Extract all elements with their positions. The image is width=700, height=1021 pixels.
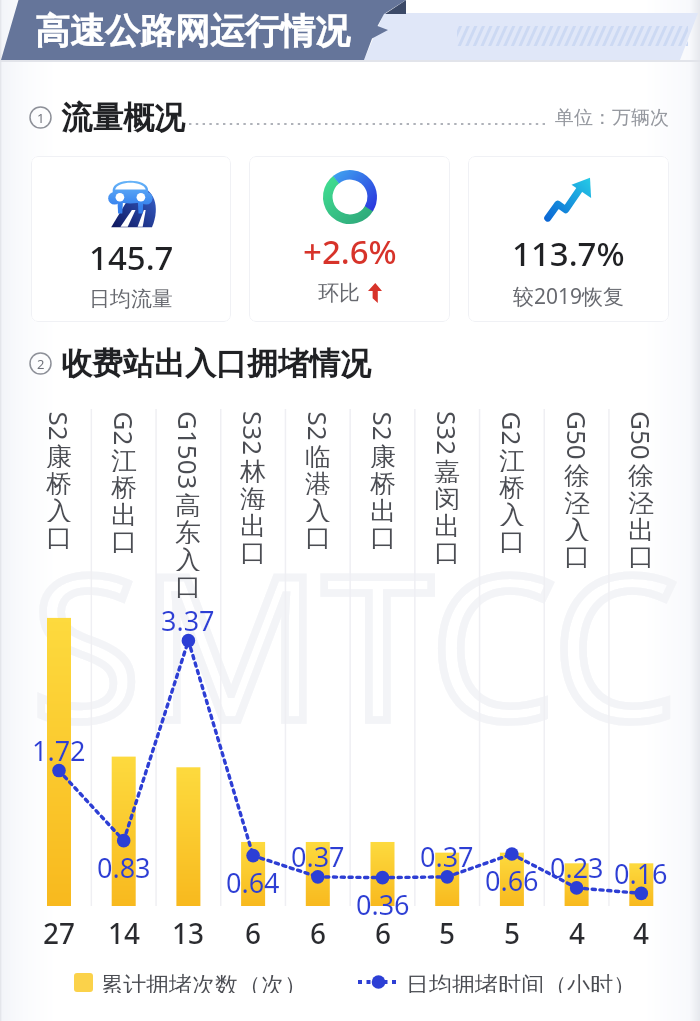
staticText: 临 [296, 441, 340, 468]
staticText: 6 [245, 914, 262, 952]
staticText: 林 [231, 456, 275, 483]
staticText: 日均流量 [89, 286, 173, 312]
button[interactable]: Recovery vs 2019 [468, 156, 669, 322]
staticText: 5 [504, 914, 521, 952]
staticText: 6 [310, 914, 327, 952]
staticText: 口 [296, 522, 340, 549]
button[interactable]: 日均拥堵时间（小时） [357, 971, 636, 993]
button[interactable]: Month over month [249, 156, 450, 322]
staticText: 泾 [555, 487, 599, 514]
staticText: +2.6% [303, 229, 397, 274]
staticText: 4 [569, 914, 586, 952]
staticText: 嘉 [425, 456, 469, 483]
staticText: 单位：万辆次 [555, 106, 669, 130]
staticText: 口 [425, 537, 469, 564]
staticText: 6 [375, 914, 392, 952]
staticText: 13 [172, 914, 205, 952]
button[interactable]: Average daily traffic [31, 156, 231, 322]
staticText: 海 [231, 483, 275, 510]
staticText: G2 [494, 411, 529, 445]
staticText: 口 [361, 522, 405, 549]
staticText: 入 [490, 499, 534, 526]
staticText: 出 [361, 495, 405, 522]
staticText: 康 [361, 441, 405, 468]
staticText: 出 [231, 510, 275, 537]
staticText: G50 [624, 411, 659, 460]
staticText: 2 [37, 355, 45, 373]
staticText: S2 [41, 411, 76, 441]
staticText: 0.64 [226, 864, 280, 896]
staticText: 0.37 [420, 838, 474, 870]
staticText: 流量概况 [61, 98, 185, 137]
staticText: 14 [108, 914, 141, 952]
staticText: 高 [166, 490, 210, 517]
staticText: 徐 [619, 460, 663, 487]
staticText: 东 [166, 517, 210, 544]
staticText: 出 [619, 514, 663, 541]
staticText: 桥 [102, 472, 146, 499]
staticText: 0.16 [614, 855, 668, 887]
staticText: 环比 [318, 280, 360, 306]
staticText: S32 [236, 411, 271, 456]
staticText: S2 [365, 411, 400, 441]
staticText: G1503 [171, 411, 206, 490]
staticText: 出 [102, 499, 146, 526]
staticText: 收费站出入口拥堵情况 [61, 344, 371, 383]
staticText: 较2019恢复 [513, 282, 625, 311]
button[interactable]: 累计拥堵次数（次） [74, 971, 307, 993]
staticText: SMTCC [31, 506, 679, 778]
staticText: 入 [296, 495, 340, 522]
staticText: 0.66 [485, 862, 539, 894]
staticText: 康 [37, 441, 81, 468]
staticText: 高速公路网运行情况 [35, 9, 350, 53]
staticText: 1.72 [32, 732, 86, 764]
staticText: 桥 [37, 468, 81, 495]
staticText: 港 [296, 468, 340, 495]
staticText: 0.23 [550, 849, 604, 881]
staticText: 0.37 [291, 838, 345, 870]
staticText: 江 [490, 445, 534, 472]
staticText: 113.7% [512, 231, 625, 276]
staticText: 泾 [619, 487, 663, 514]
staticText: 口 [231, 537, 275, 564]
staticText: G2 [106, 411, 141, 445]
staticText: 徐 [555, 460, 599, 487]
staticText: 145.7 [89, 235, 174, 280]
staticText: 3.37 [161, 602, 215, 634]
staticText: 桥 [490, 472, 534, 499]
staticText: 口 [166, 571, 210, 598]
staticText: 口 [37, 522, 81, 549]
staticText: 4 [633, 914, 650, 952]
staticText: 入 [555, 514, 599, 541]
staticText: 口 [102, 526, 146, 553]
staticText: 27 [43, 914, 76, 952]
staticText: 5 [439, 914, 456, 952]
staticText: 口 [490, 526, 534, 553]
staticText: 江 [102, 445, 146, 472]
staticText: 口 [619, 541, 663, 568]
staticText: 口 [555, 541, 599, 568]
staticText: 1 [37, 109, 45, 127]
staticText: 日均拥堵时间（小时） [406, 971, 636, 993]
staticText: 0.83 [97, 849, 151, 881]
staticText: 桥 [361, 468, 405, 495]
staticText: 闵 [425, 483, 469, 510]
staticText: 入 [37, 495, 81, 522]
staticText: S32 [430, 411, 465, 456]
staticText: S2 [300, 411, 335, 441]
staticText: G50 [560, 411, 595, 460]
staticText: 入 [166, 544, 210, 571]
staticText: 出 [425, 510, 469, 537]
staticText: 0.36 [356, 886, 410, 918]
staticText: 累计拥堵次数（次） [100, 971, 307, 993]
